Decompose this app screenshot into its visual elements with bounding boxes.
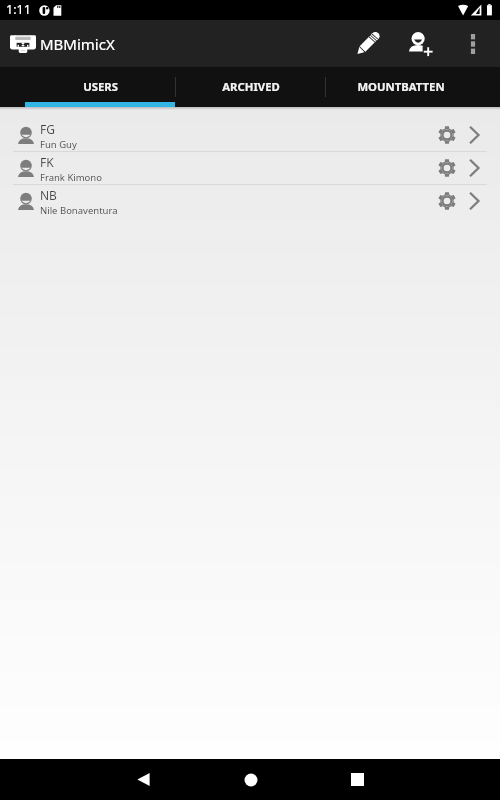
other: App logo — [10, 35, 36, 53]
button[interactable]: NB — [0, 185, 500, 217]
button[interactable]: ARCHIVED — [176, 67, 325, 107]
button[interactable]: Settings — [432, 119, 462, 151]
staticText: 1:11 — [6, 1, 31, 18]
button[interactable]: Settings — [432, 152, 462, 184]
button[interactable]: Home — [197, 759, 304, 800]
button[interactable]: Recents — [304, 759, 411, 800]
button[interactable]: FK — [0, 152, 500, 184]
staticText: ARCHIVED — [222, 79, 280, 94]
button[interactable]: FG — [0, 119, 500, 151]
staticText: USERS — [83, 79, 118, 94]
staticText: Nile Bonaventura — [40, 204, 118, 217]
staticText: FG — [40, 121, 55, 137]
button[interactable]: Open — [462, 185, 485, 217]
staticText: Frank Kimono — [40, 171, 102, 184]
button[interactable]: Back — [90, 759, 197, 800]
staticText: MBMimicX — [40, 34, 115, 54]
staticText: Fun Guy — [40, 138, 77, 151]
button[interactable]: More options — [453, 20, 493, 67]
staticText: FK — [40, 154, 54, 170]
staticText: MOUNTBATTEN — [357, 79, 445, 94]
button[interactable]: USERS — [25, 67, 175, 107]
button[interactable]: Settings — [432, 185, 462, 217]
button[interactable]: Add user — [388, 20, 453, 67]
staticText: NB — [40, 187, 57, 203]
button[interactable]: Open — [462, 119, 485, 151]
button[interactable]: MOUNTBATTEN — [326, 67, 475, 107]
button[interactable]: Open — [462, 152, 485, 184]
button[interactable]: Edit — [346, 20, 388, 67]
